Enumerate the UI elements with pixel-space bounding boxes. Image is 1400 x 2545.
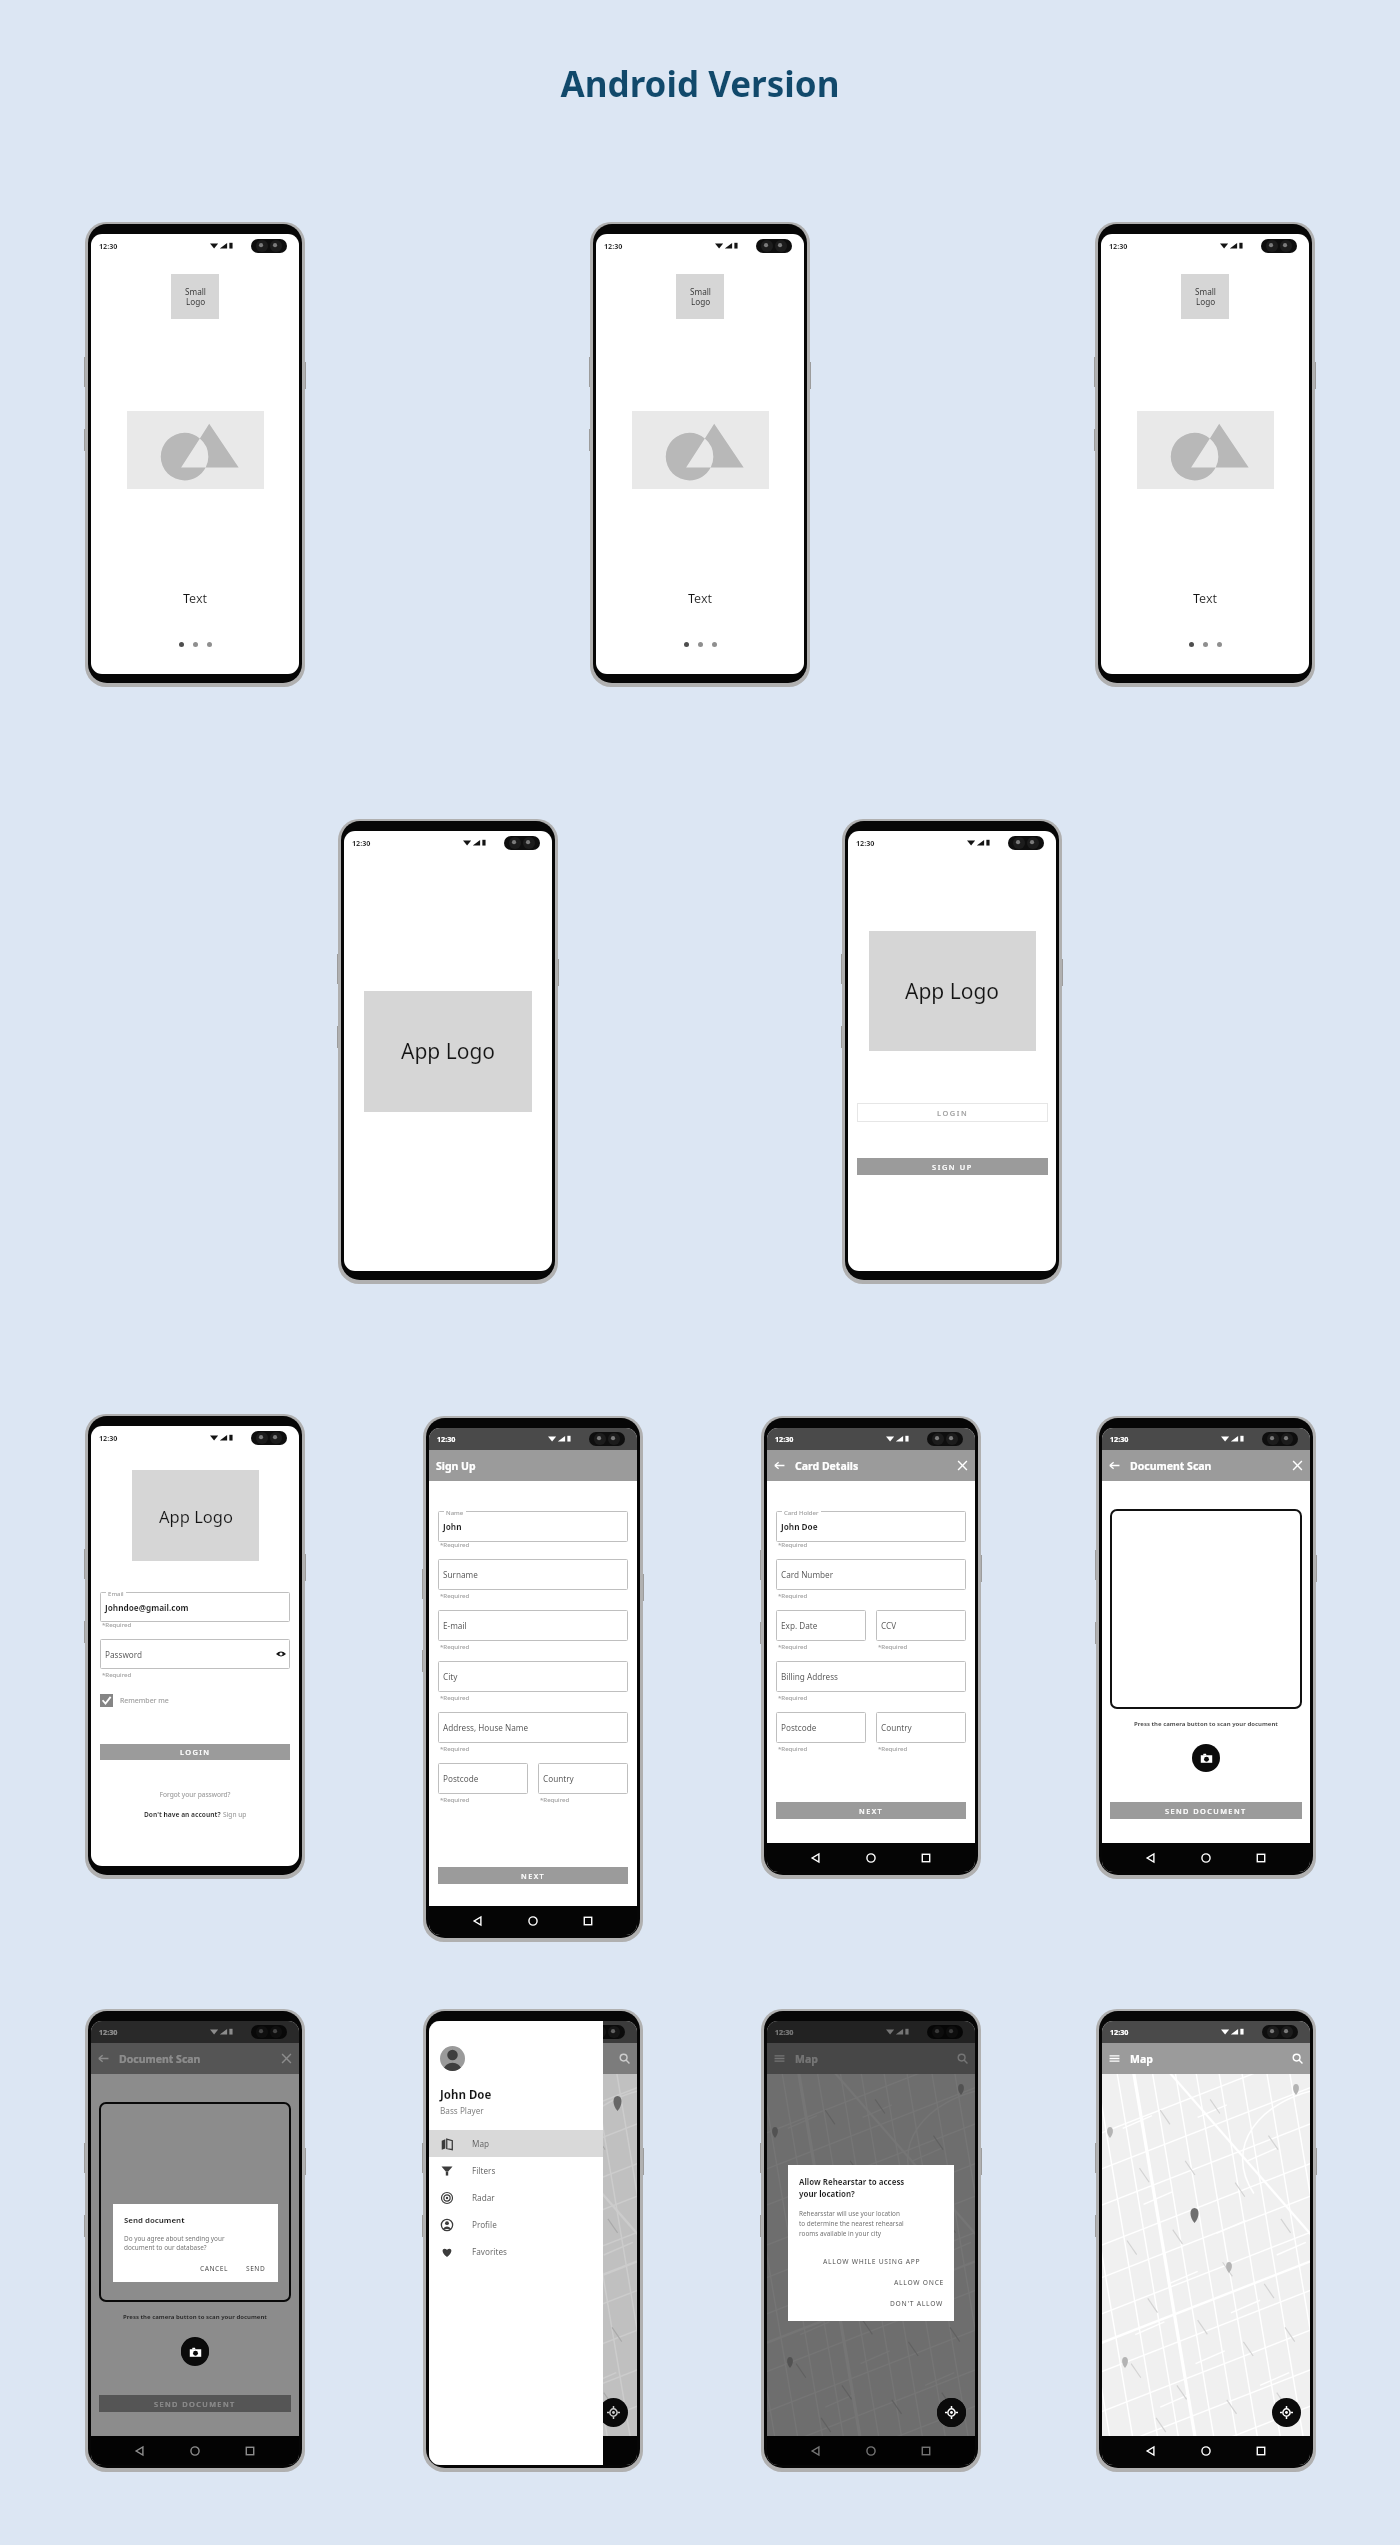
button[interactable]: Page 2 <box>698 642 703 647</box>
button[interactable]: Map <box>429 2130 603 2157</box>
button[interactable]: My location <box>599 2398 628 2427</box>
button[interactable]: SIGN UP <box>857 1158 1048 1175</box>
button[interactable]: Card Number <box>776 1559 966 1590</box>
staticText: 12:30 <box>1110 1434 1129 1444</box>
button[interactable]: Page 2 <box>193 642 198 647</box>
button[interactable]: Page 1 <box>1189 642 1194 647</box>
staticText: *Required <box>878 1642 908 1650</box>
button[interactable]: Back <box>772 1458 787 1473</box>
button[interactable]: Radar <box>429 2184 603 2211</box>
staticText: CANCEL <box>200 2264 229 2273</box>
button[interactable]: Surname <box>438 1559 628 1590</box>
staticText: LOGIN <box>180 1747 211 1757</box>
button[interactable]: Back <box>96 2051 111 2066</box>
button[interactable]: Page 3 <box>712 642 717 647</box>
staticText: App Logo <box>401 1037 496 1066</box>
button[interactable]: Filters <box>429 2157 603 2184</box>
staticText: *Required <box>440 1642 470 1650</box>
button[interactable]: Sign up <box>223 1810 247 1819</box>
button[interactable]: SEND <box>243 2262 269 2275</box>
button[interactable]: Address, House Name <box>438 1712 628 1743</box>
button[interactable]: John Doe <box>776 1511 966 1542</box>
button[interactable]: John <box>438 1511 628 1542</box>
button[interactable]: Country <box>538 1763 628 1794</box>
button[interactable]: Country <box>876 1712 966 1743</box>
staticText: 12:30 <box>352 838 371 848</box>
button[interactable]: Page 1 <box>179 642 184 647</box>
button[interactable]: SEND DOCUMENT <box>99 2395 291 2412</box>
staticText: SEND DOCUMENT <box>1165 1806 1247 1816</box>
staticText: App Logo <box>905 977 1000 1006</box>
staticText: Card Holder <box>784 1508 819 1516</box>
button[interactable]: My location <box>937 2398 966 2427</box>
button[interactable]: NEXT <box>438 1867 628 1884</box>
button[interactable]: Remember me <box>100 1694 172 1707</box>
button[interactable]: Password <box>100 1639 290 1669</box>
button[interactable]: DON'T ALLOW <box>799 2296 944 2311</box>
button[interactable]: SEND DOCUMENT <box>1110 1802 1302 1819</box>
button[interactable]: NEXT <box>776 1802 966 1819</box>
staticText: John Doe <box>781 1521 818 1532</box>
button[interactable]: Camera <box>181 2338 209 2366</box>
button[interactable]: Profile <box>429 2211 603 2238</box>
staticText: Billing Address <box>781 1671 838 1682</box>
staticText: *Required <box>540 1795 570 1803</box>
staticText: Text <box>596 590 804 607</box>
button[interactable]: Close <box>1290 1458 1305 1473</box>
staticText: *Required <box>778 1642 808 1650</box>
button[interactable]: Open menu <box>772 2051 787 2066</box>
other: Show password <box>276 1649 286 1659</box>
staticText: Radar <box>472 2192 495 2203</box>
button[interactable]: LOGIN <box>100 1744 290 1760</box>
staticText: Android Version <box>0 60 1400 108</box>
button[interactable]: Exp. Date <box>776 1610 866 1641</box>
staticText: 12:30 <box>1109 241 1128 251</box>
staticText: *Required <box>440 1795 470 1803</box>
button[interactable]: Camera <box>1192 1744 1220 1772</box>
button[interactable]: Page 3 <box>1217 642 1222 647</box>
button[interactable]: Postcode <box>438 1763 528 1794</box>
button[interactable]: CANCEL <box>197 2262 232 2275</box>
button[interactable]: CCV <box>876 1610 966 1641</box>
button[interactable]: Camera <box>181 2337 209 2365</box>
button[interactable]: Back <box>1107 1458 1122 1473</box>
staticText: 12:30 <box>856 838 875 848</box>
button[interactable]: ALLOW ONCE <box>799 2275 944 2290</box>
button[interactable]: Favorites <box>429 2238 603 2265</box>
staticText: LOGIN <box>937 1108 969 1118</box>
button[interactable]: My location <box>937 2398 966 2427</box>
staticText: SIGN UP <box>932 1162 973 1172</box>
staticText: Don't have an account? <box>144 1810 223 1819</box>
staticText: 12:30 <box>1110 2027 1129 2037</box>
button[interactable]: Profile photo <box>440 2046 465 2071</box>
button[interactable]: Close <box>279 2051 294 2066</box>
button[interactable]: Search <box>955 2051 970 2066</box>
staticText: John Doe <box>440 2087 492 2103</box>
staticText: NEXT <box>521 1871 546 1881</box>
staticText: *Required <box>102 1620 132 1628</box>
button[interactable]: LOGIN <box>857 1103 1048 1122</box>
staticText: Card Details <box>795 1459 859 1473</box>
button[interactable]: City <box>438 1661 628 1692</box>
button[interactable]: Open menu <box>1107 2051 1122 2066</box>
button[interactable]: Billing Address <box>776 1661 966 1692</box>
button[interactable]: Johndoe@gmail.com <box>100 1592 290 1622</box>
button[interactable]: Page 2 <box>1203 642 1208 647</box>
button[interactable]: ALLOW WHILE USING APP <box>799 2254 944 2269</box>
button[interactable]: E-mail <box>438 1610 628 1641</box>
button[interactable]: Search <box>1290 2051 1305 2066</box>
staticText: Map <box>1130 2052 1153 2066</box>
button[interactable]: Search <box>617 2051 632 2066</box>
staticText: *Required <box>440 1693 470 1701</box>
button[interactable]: My location <box>1272 2398 1301 2427</box>
button[interactable]: Close <box>955 1458 970 1473</box>
staticText: City <box>443 1671 458 1682</box>
button[interactable]: Page 1 <box>684 642 689 647</box>
staticText: *Required <box>440 1744 470 1752</box>
button[interactable]: Page 3 <box>207 642 212 647</box>
button[interactable]: Postcode <box>776 1712 866 1743</box>
staticText: Filters <box>472 2165 496 2176</box>
button[interactable]: Forgot your password? <box>100 1790 290 1799</box>
staticText: Send document <box>124 2215 185 2226</box>
